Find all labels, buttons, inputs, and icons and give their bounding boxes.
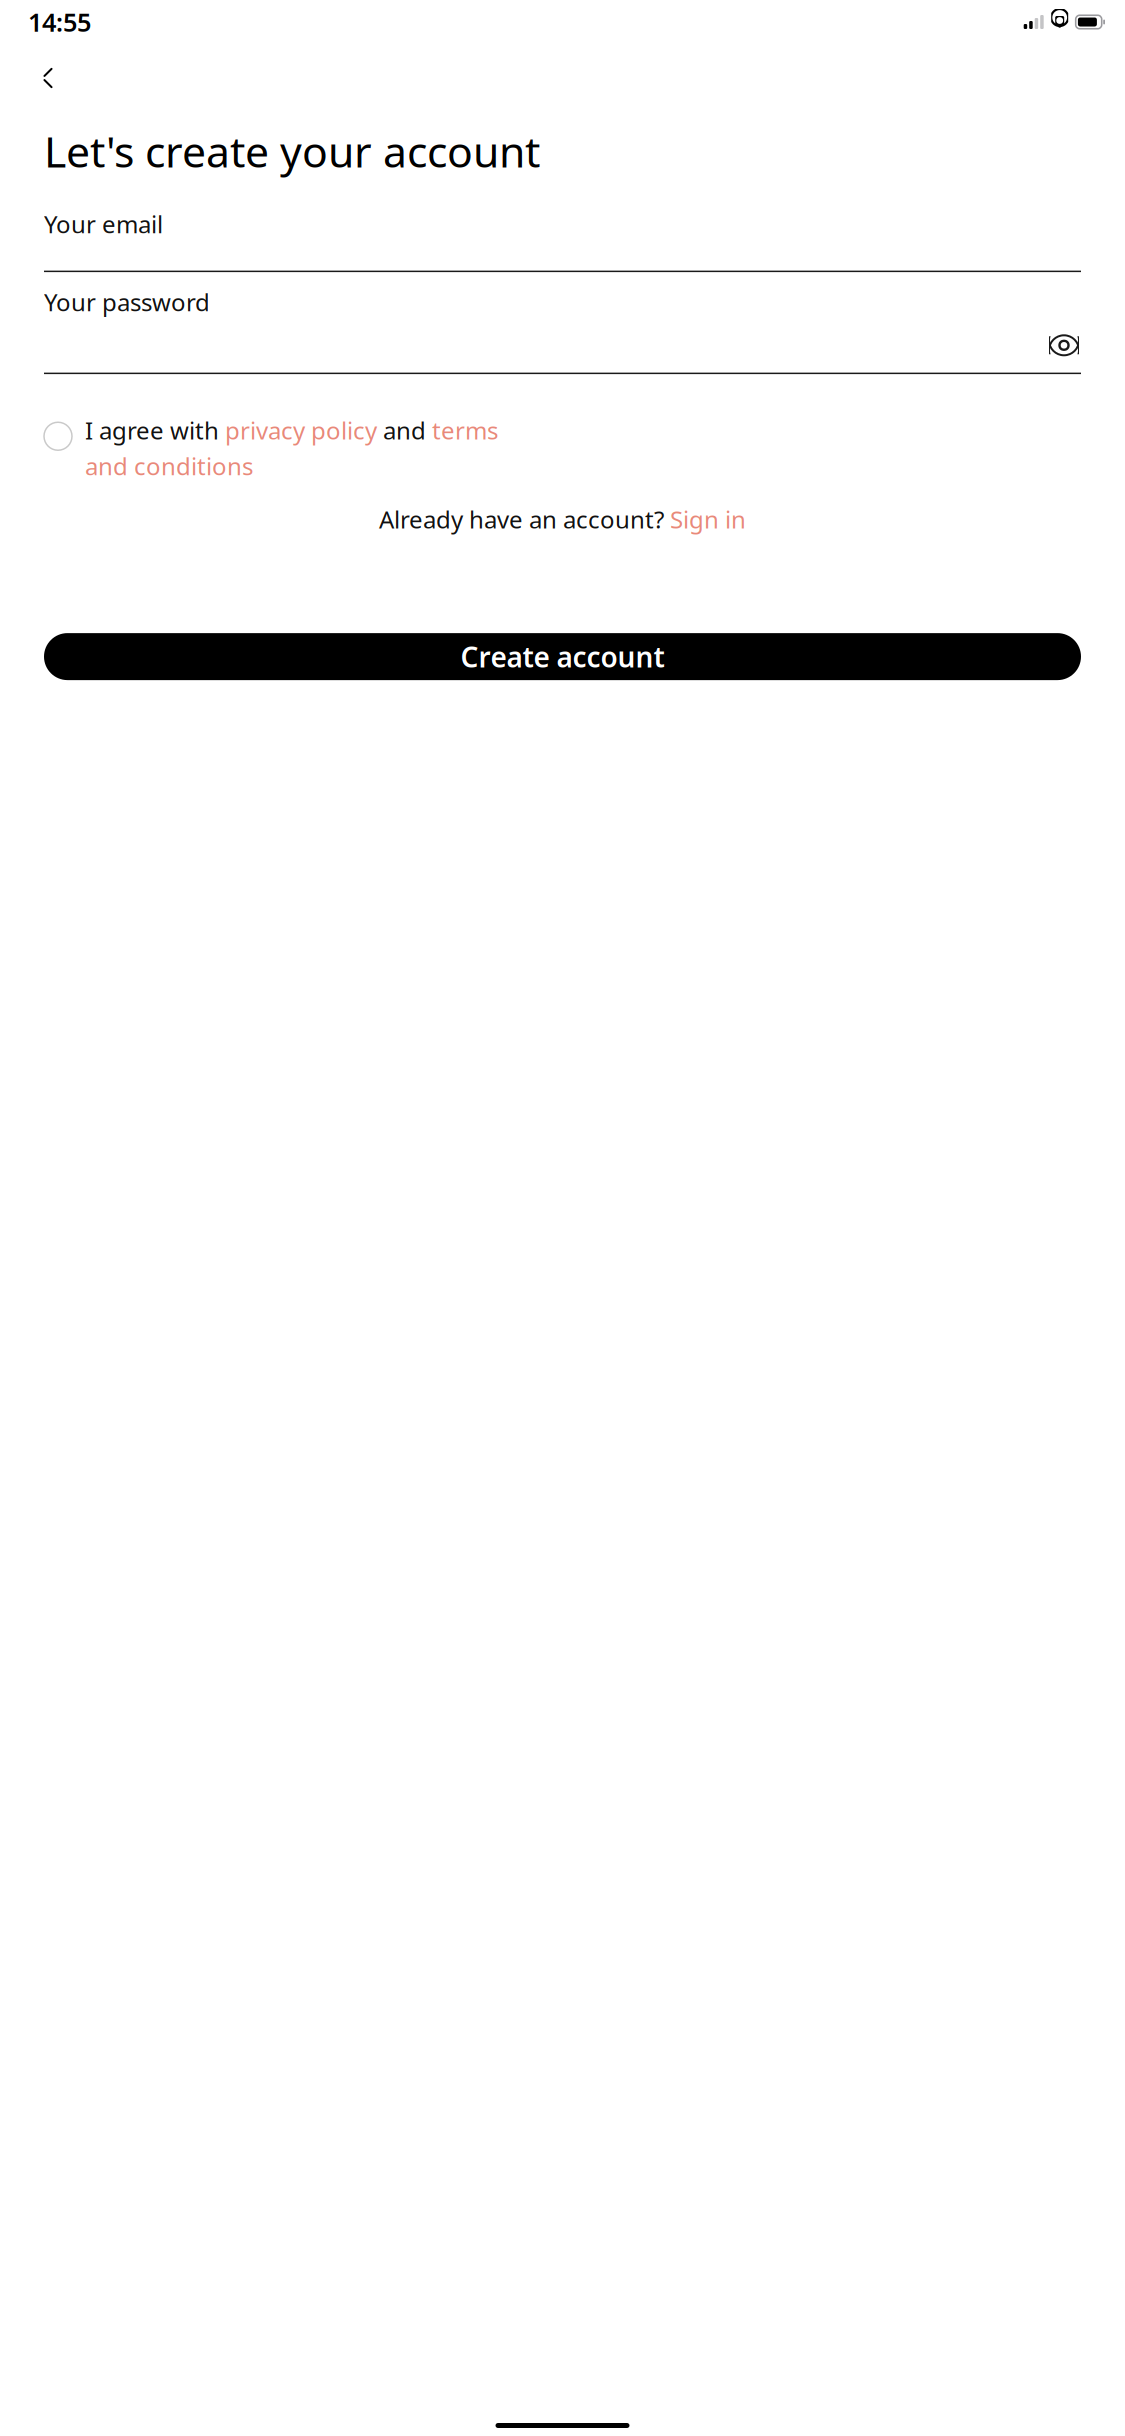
staticText: 14:55: [28, 5, 91, 39]
staticText: Your email: [44, 208, 163, 240]
staticText: terms: [432, 414, 498, 446]
staticText: Create account: [460, 638, 664, 675]
button[interactable]: I agree with: [0, 414, 1125, 482]
staticText: privacy policy: [225, 414, 377, 446]
staticText: I agree with: [85, 414, 225, 446]
staticText: Sign in: [670, 503, 746, 535]
staticText: and conditions: [85, 450, 253, 482]
button[interactable]: Back: [28, 58, 68, 98]
staticText: Let's create your account: [44, 122, 540, 180]
button[interactable]: Show password: [1047, 332, 1081, 358]
button[interactable]: Create account: [0, 633, 1125, 680]
staticText: Already have an account?: [379, 503, 670, 535]
staticText: Your password: [44, 286, 210, 318]
button[interactable]: Already have an account?: [0, 504, 1125, 534]
staticText: and: [377, 414, 432, 446]
